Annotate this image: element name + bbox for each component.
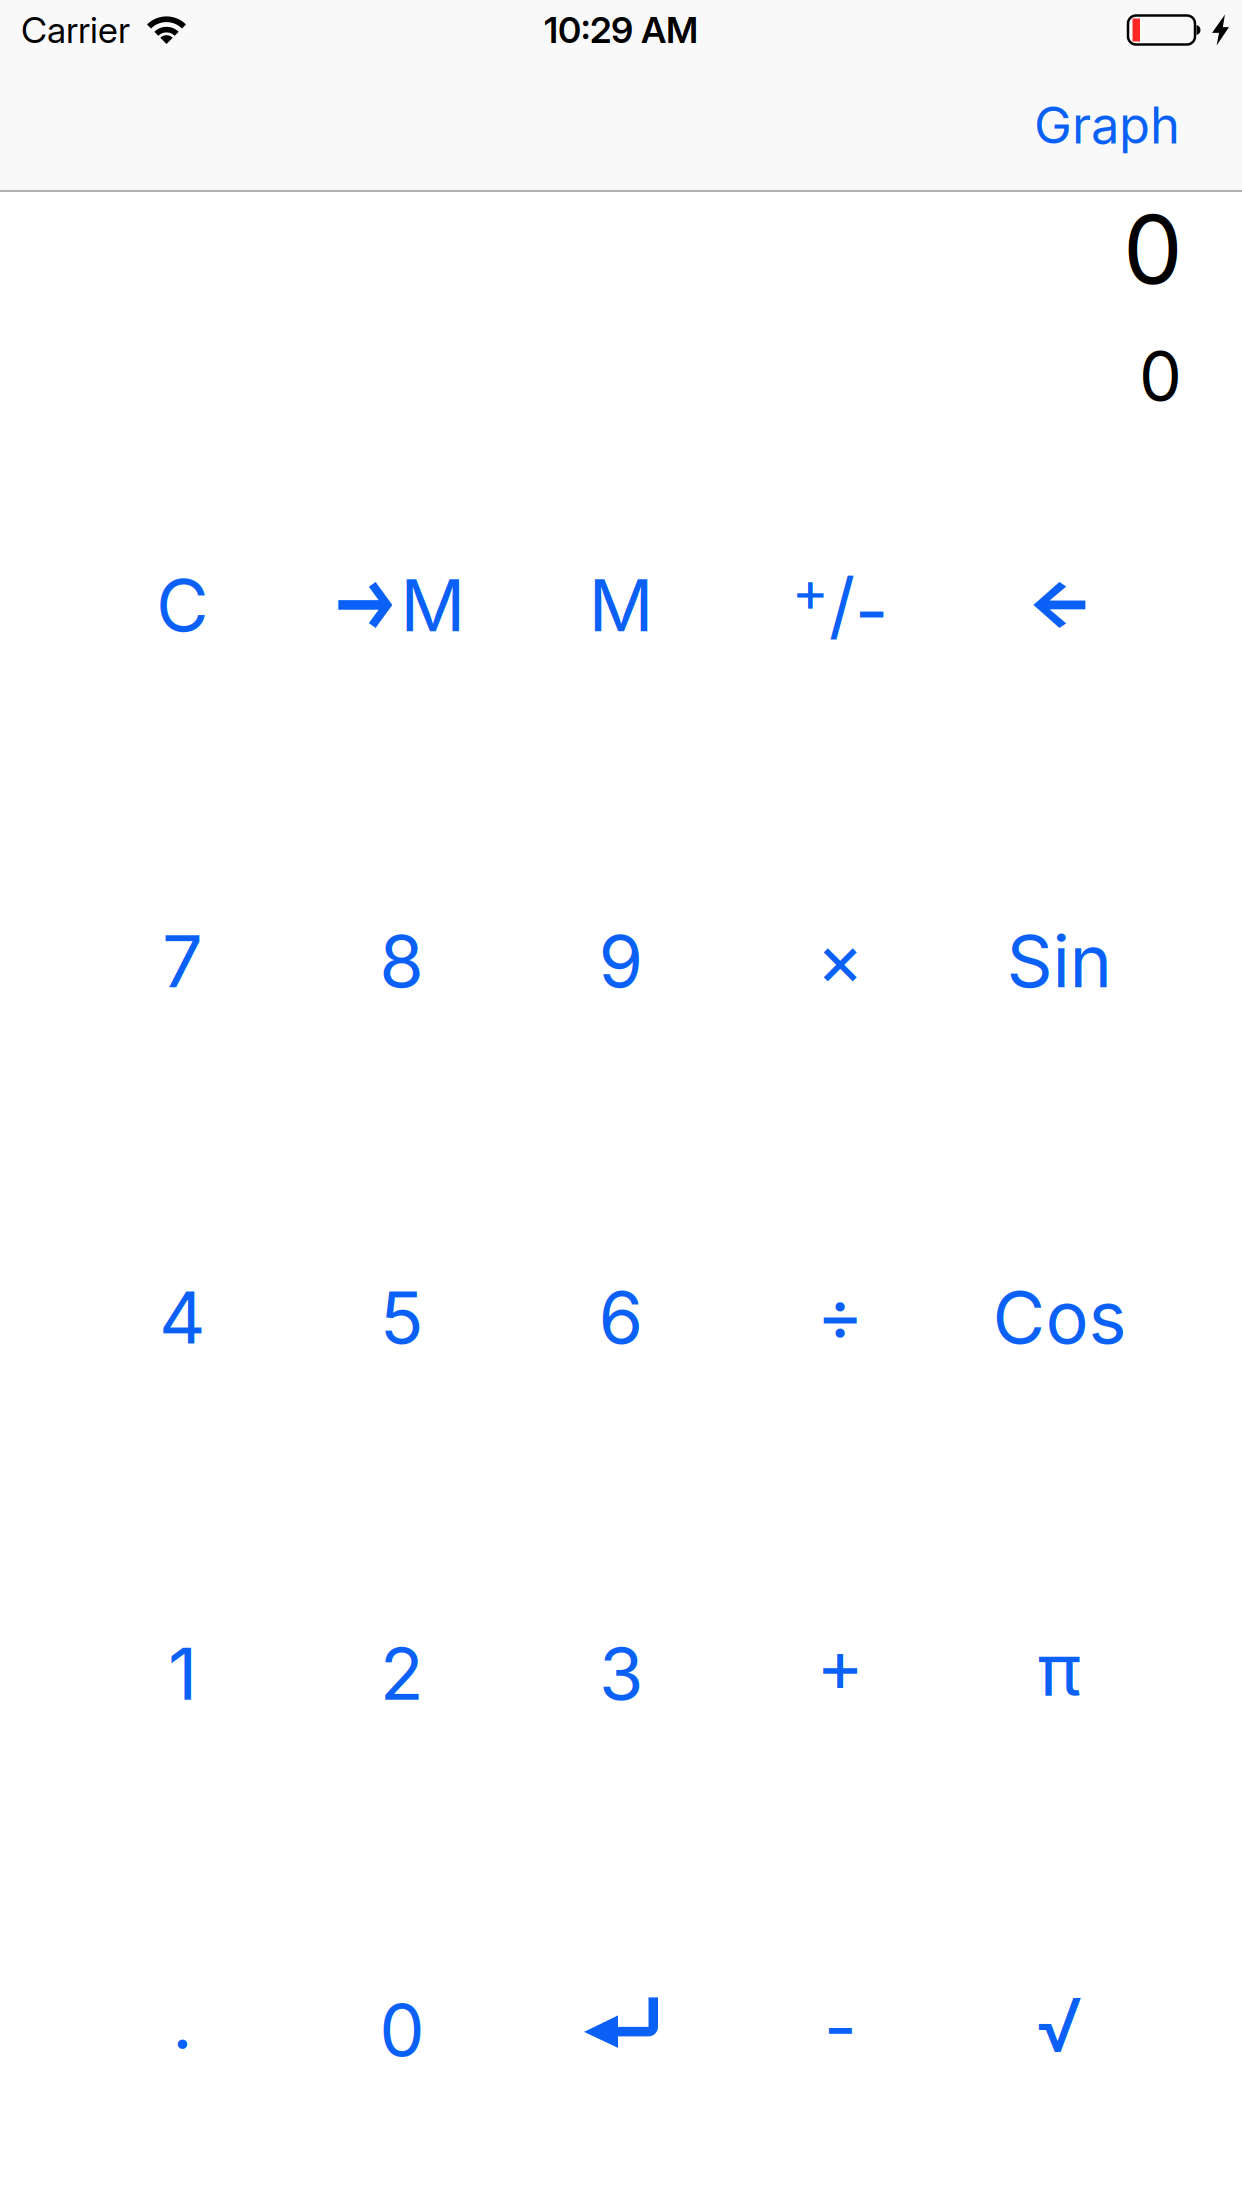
staticText: + xyxy=(816,1622,864,1709)
button[interactable]: Subtract xyxy=(731,1852,950,2208)
staticText: 6 xyxy=(598,1274,643,1361)
staticText: 5 xyxy=(380,1274,424,1361)
staticText: M xyxy=(400,561,465,648)
staticText: 0 xyxy=(1139,334,1182,417)
staticText: π xyxy=(1037,1626,1081,1713)
staticText: 3 xyxy=(599,1630,643,1717)
staticText: - xyxy=(855,567,889,655)
button[interactable]: Divide xyxy=(731,1139,950,1495)
button[interactable]: 2 xyxy=(292,1495,511,1852)
staticText: × xyxy=(816,916,864,1003)
button[interactable]: 0 xyxy=(292,1852,511,2208)
staticText: Graph xyxy=(1034,94,1180,156)
staticText: 7 xyxy=(162,918,203,1005)
button[interactable]: Sine xyxy=(950,783,1169,1139)
button[interactable]: Backspace xyxy=(950,427,1169,783)
staticText: 4 xyxy=(159,1274,206,1361)
button[interactable]: Cosine xyxy=(950,1139,1169,1495)
button[interactable]: 6 xyxy=(511,1139,731,1495)
button[interactable]: 5 xyxy=(292,1139,511,1495)
staticText: 10:29 AM xyxy=(544,8,698,52)
button[interactable]: 4 xyxy=(73,1139,292,1495)
staticText: 8 xyxy=(379,918,424,1005)
staticText: 0 xyxy=(379,1986,424,2073)
button[interactable]: Square root xyxy=(950,1852,1169,2208)
button[interactable]: 7 xyxy=(73,783,292,1139)
button[interactable]: Pi xyxy=(950,1495,1169,1852)
staticText: 0 xyxy=(1123,192,1183,306)
staticText: ÷ xyxy=(816,1271,864,1358)
staticText: 1 xyxy=(168,1630,197,1717)
button[interactable]: Decimal point xyxy=(73,1852,292,2208)
staticText: + xyxy=(792,557,829,625)
button[interactable]: Clear xyxy=(73,427,292,783)
staticText: / xyxy=(829,561,855,649)
staticText: Carrier xyxy=(21,8,130,52)
staticText: Sin xyxy=(1006,918,1112,1005)
button[interactable]: 3 xyxy=(511,1495,731,1852)
button[interactable]: Change sign xyxy=(731,427,950,783)
button[interactable]: 1 xyxy=(73,1495,292,1852)
staticText: . xyxy=(172,1979,193,2066)
staticText: - xyxy=(824,1983,857,2070)
button[interactable]: 8 xyxy=(292,783,511,1139)
staticText: C xyxy=(156,561,209,648)
button[interactable]: Store to memory xyxy=(292,427,511,783)
button[interactable]: Multiply xyxy=(731,783,950,1139)
staticText: Cos xyxy=(992,1274,1126,1361)
button[interactable]: Memory recall xyxy=(511,427,731,783)
staticText: √ xyxy=(1036,1980,1083,2070)
button[interactable]: 9 xyxy=(511,783,731,1139)
button[interactable]: Enter xyxy=(511,1852,731,2208)
button[interactable]: Add xyxy=(731,1495,950,1852)
button[interactable]: Graph xyxy=(1034,94,1180,156)
staticText: 9 xyxy=(598,918,643,1005)
staticText: M xyxy=(588,561,653,648)
staticText: 2 xyxy=(380,1630,424,1717)
